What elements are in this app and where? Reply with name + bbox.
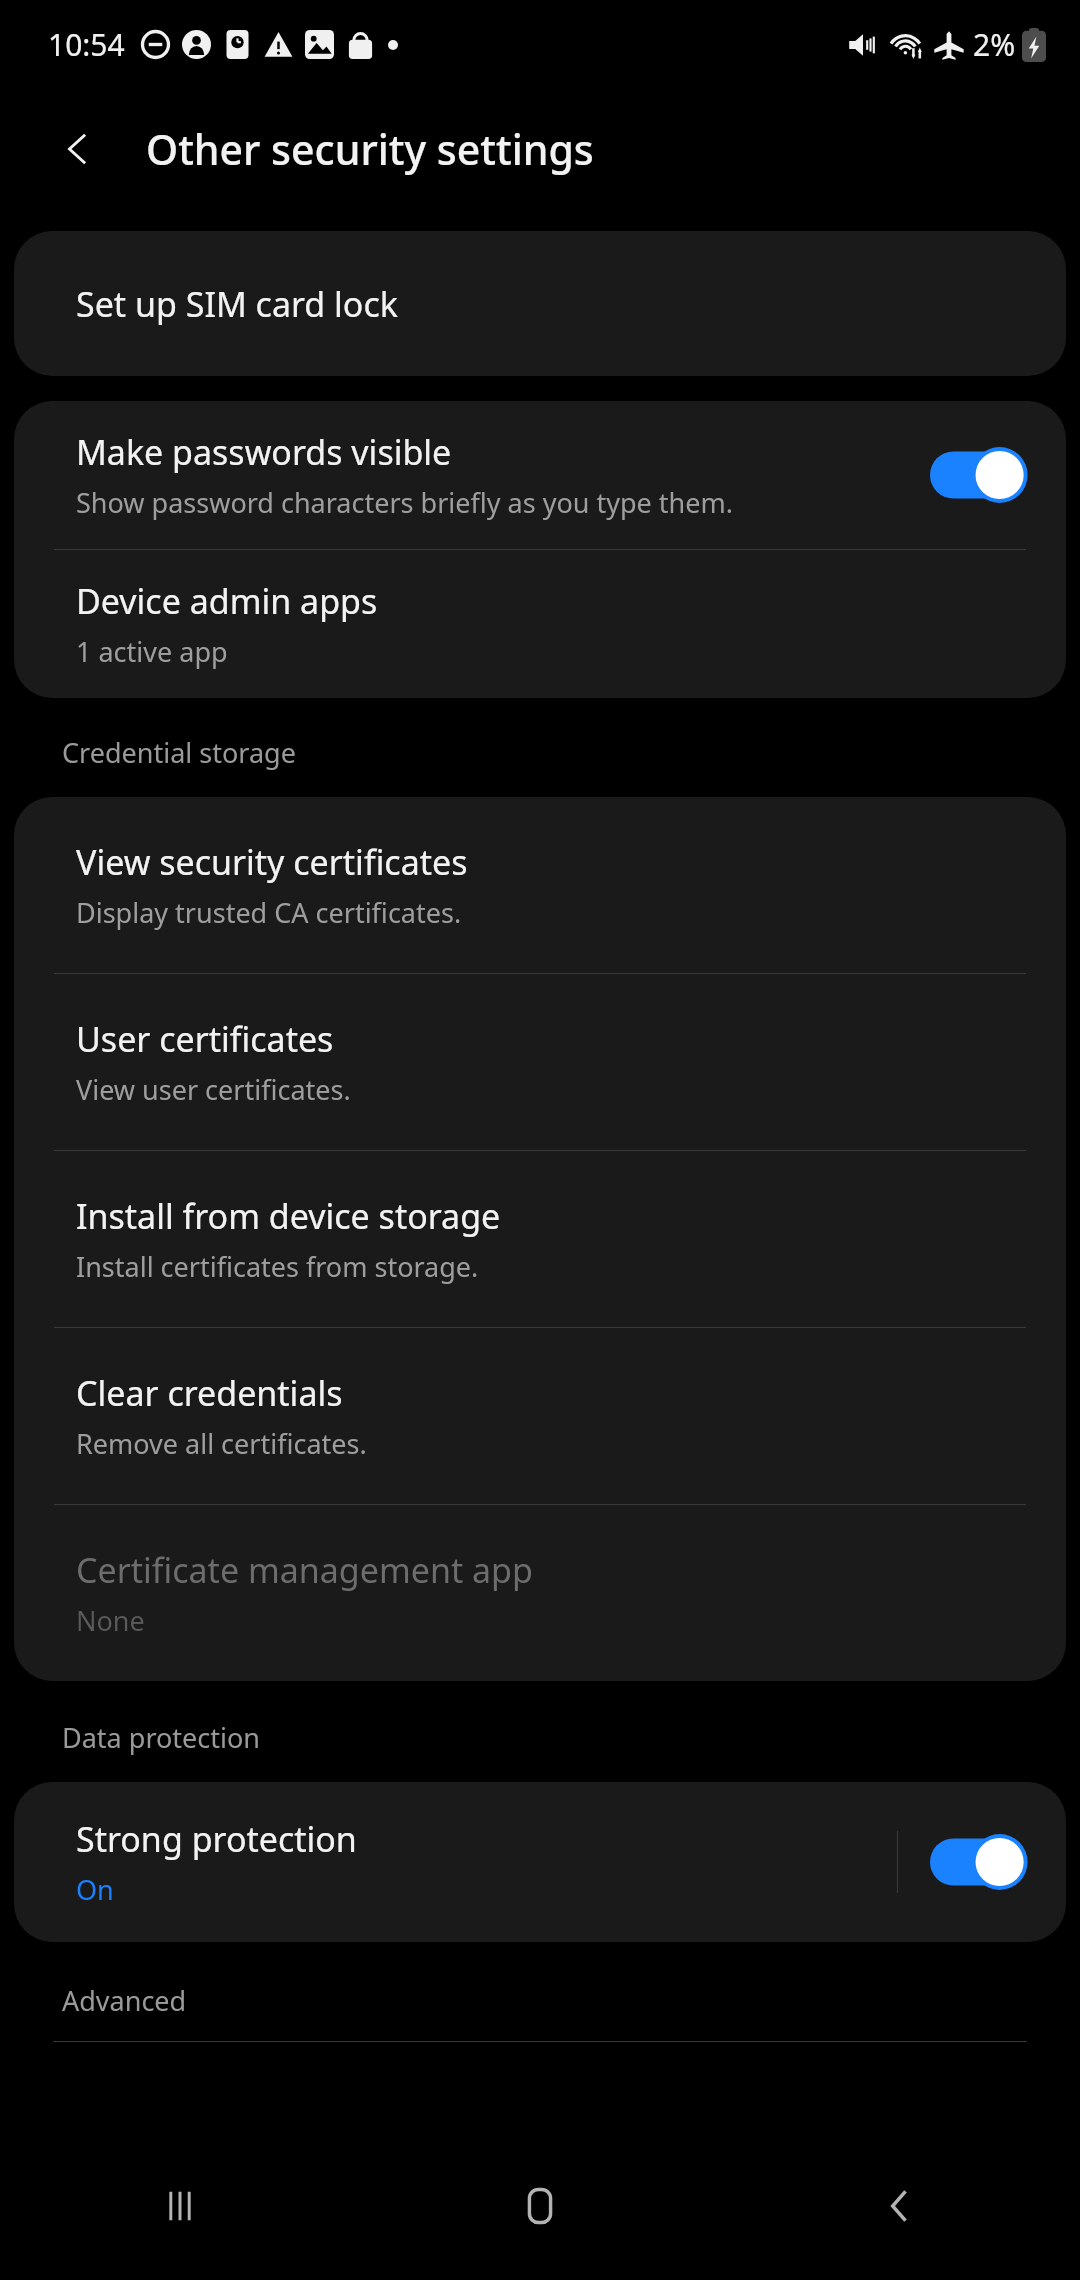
staticText: Show password characters briefly as you … — [76, 484, 733, 521]
staticText: On — [76, 1871, 114, 1908]
button[interactable]: Install from device storage — [14, 1151, 1066, 1327]
staticText: Display trusted CA certificates. — [76, 894, 462, 931]
staticText: Set up SIM card lock — [76, 281, 398, 327]
staticText: Clear credentials — [76, 1370, 343, 1416]
staticText: View user certificates. — [76, 1071, 351, 1108]
staticText: Make passwords visible — [76, 429, 452, 475]
button[interactable]: Back — [720, 2132, 1080, 2280]
staticText: Install certificates from storage. — [76, 1248, 479, 1285]
button[interactable]: Make passwords visible — [14, 401, 1066, 549]
button[interactable]: Home — [360, 2132, 720, 2280]
button[interactable]: Toggle switch, on — [930, 1834, 1026, 1890]
staticText: User certificates — [76, 1016, 334, 1062]
button[interactable]: User certificates — [14, 974, 1066, 1150]
staticText: Remove all certificates. — [76, 1425, 367, 1462]
button[interactable]: Clear credentials — [14, 1328, 1066, 1504]
staticText: Data protection — [62, 1719, 260, 1756]
button[interactable]: Set up SIM card lock — [14, 231, 1066, 376]
staticText: Advanced — [62, 1982, 187, 2019]
staticText: 1 active app — [76, 633, 228, 670]
staticText: Certificate management app — [76, 1547, 533, 1593]
button[interactable]: Back — [40, 110, 118, 188]
button[interactable]: View security certificates — [14, 797, 1066, 973]
staticText: View security certificates — [76, 839, 468, 885]
staticText: Device admin apps — [76, 578, 378, 624]
staticText: Other security settings — [146, 121, 594, 177]
staticText: None — [76, 1602, 145, 1639]
staticText: Credential storage — [62, 734, 296, 771]
button[interactable]: Recent apps — [0, 2132, 360, 2280]
staticText: 2% — [973, 24, 1016, 65]
button[interactable]: Strong protection — [14, 1782, 1066, 1942]
staticText: 10:54 — [48, 24, 125, 65]
button[interactable]: Device admin apps — [14, 550, 1066, 698]
button[interactable]: Toggle switch, on — [930, 447, 1026, 503]
button[interactable]: Certificate management app — [14, 1505, 1066, 1681]
staticText: Install from device storage — [76, 1193, 501, 1239]
staticText: Strong protection — [76, 1816, 357, 1862]
